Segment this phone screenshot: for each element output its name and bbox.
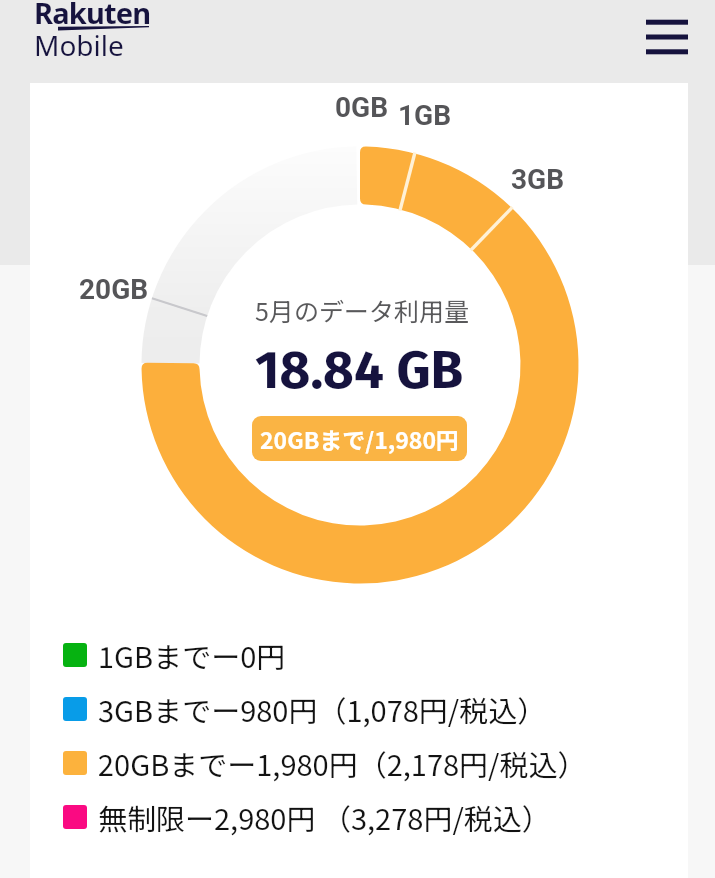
button[interactable]: 3GBまでー980円（1,078円/税込） [63,682,547,736]
staticText: 3GBまでー980円（1,078円/税込） [98,688,547,730]
staticText: 18.84 GB [255,338,464,402]
staticText: 1GBまでー0円 [98,634,286,676]
button[interactable]: 20GBまでー1,980円（2,178円/税込） [63,736,587,790]
button[interactable]: Menu [636,6,698,68]
staticText: 20GBまでー1,980円（2,178円/税込） [98,742,587,784]
staticText: 無制限ー2,980円 （3,278円/税込） [98,796,551,838]
button[interactable]: 無制限ー2,980円 （3,278円/税込） [63,790,551,844]
staticText: Mobile [34,26,124,64]
staticText: 20GBまで/1,980円 [260,422,459,455]
staticText: 1GB [398,99,452,132]
button[interactable]: Rakuten Mobile [33,0,158,70]
button[interactable]: 20GBまで/1,980円 [252,416,467,461]
staticText: 20GB [79,273,149,306]
button[interactable]: 1GBまでー0円 [63,628,286,682]
staticText: 3GB [511,163,565,196]
staticText: 5月のデータ利用量 [255,292,469,328]
staticText: 0GB [335,91,389,124]
staticText: Rakuten [34,0,151,32]
